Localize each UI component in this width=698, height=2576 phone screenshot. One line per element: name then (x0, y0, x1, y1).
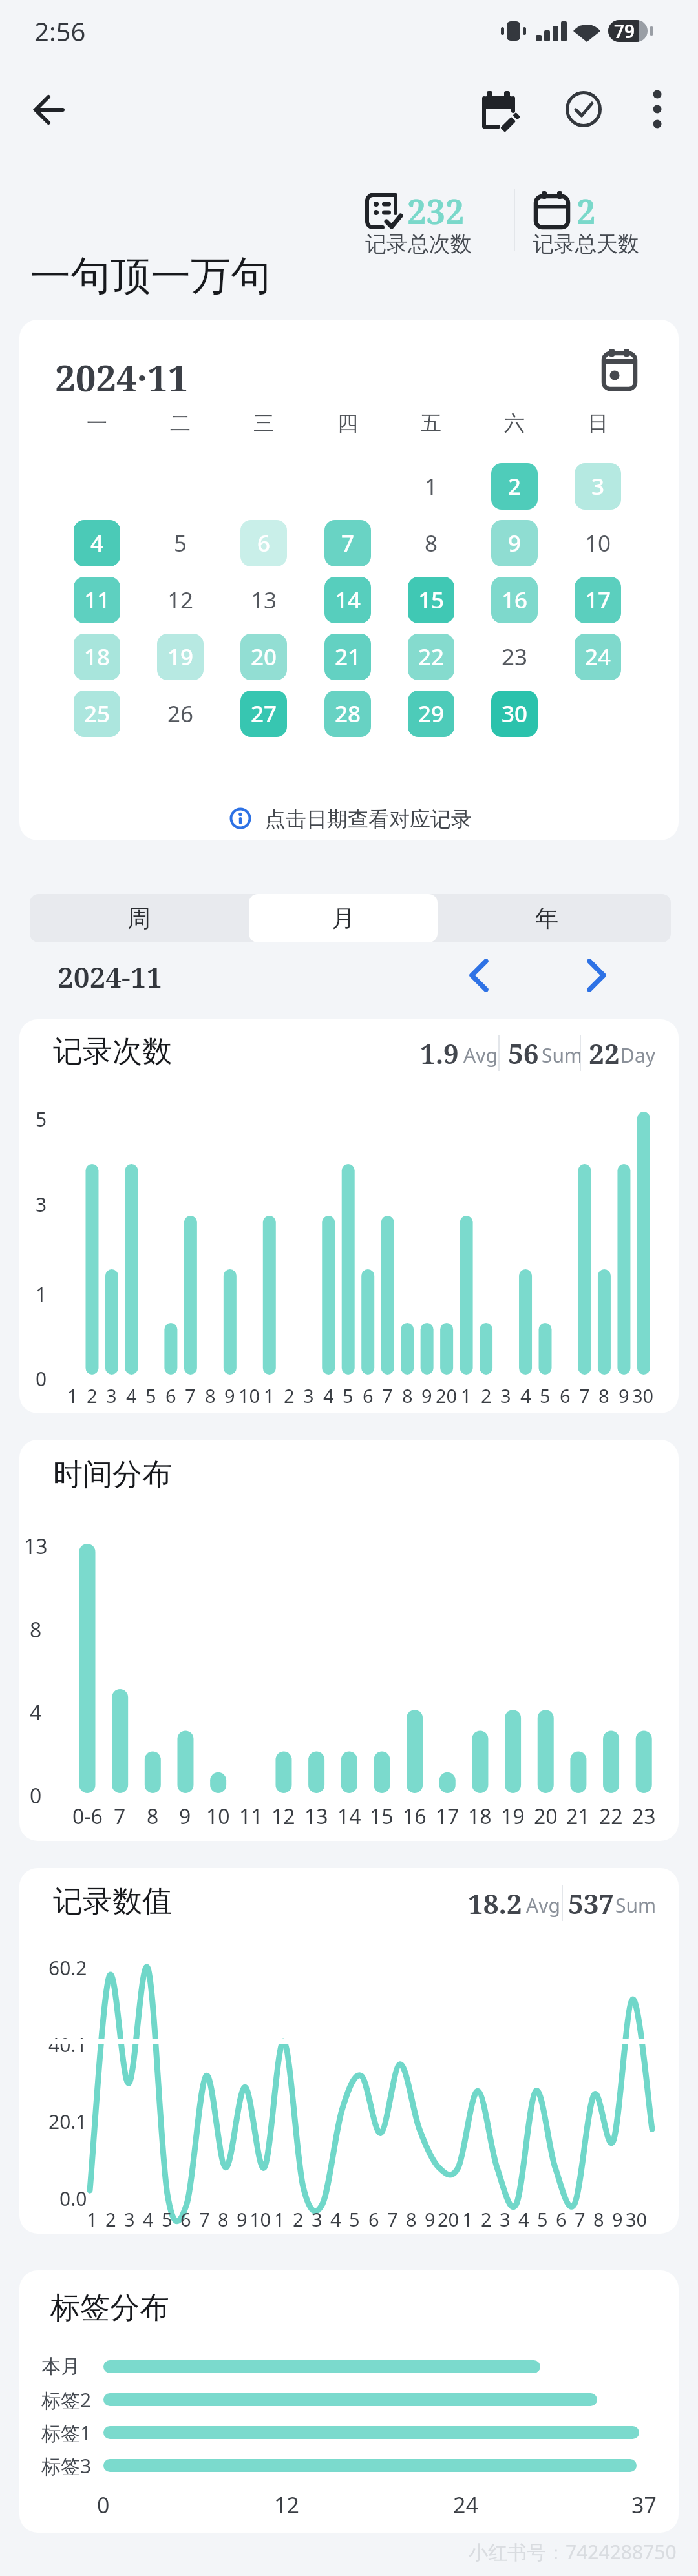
staticText: 26 (167, 698, 194, 729)
staticText: 7 (185, 1383, 196, 1408)
button[interactable]: 23 (491, 634, 538, 680)
button[interactable] (642, 87, 673, 131)
staticText: 5 (540, 1383, 551, 1408)
staticText: 2 (508, 471, 522, 502)
staticText: 2 (481, 2207, 492, 2232)
staticText: 19 (167, 641, 194, 672)
button[interactable]: 16 (491, 577, 538, 623)
staticText: 5 (162, 2207, 173, 2232)
staticText: 9 (237, 2207, 248, 2232)
staticText: 3 (312, 2207, 323, 2232)
button[interactable] (30, 894, 243, 942)
button[interactable]: 28 (324, 691, 371, 737)
staticText: 20 (436, 1383, 458, 1408)
staticText: 6 (165, 1383, 176, 1408)
button[interactable]: 2 (491, 463, 538, 510)
staticText: 29 (418, 698, 445, 729)
staticText: 记录次数 (53, 1033, 172, 1070)
button[interactable]: 10 (575, 520, 621, 566)
staticText: 6 (257, 528, 271, 559)
staticText: 六 (504, 410, 525, 436)
staticText: 12 (271, 1802, 295, 1831)
staticText: 3 (36, 1191, 47, 1218)
button[interactable]: 21 (324, 634, 371, 680)
button[interactable]: 25 (74, 691, 120, 737)
button[interactable] (571, 950, 622, 1001)
staticText: 二 (170, 410, 191, 436)
staticText: 18 (468, 1802, 492, 1831)
staticText: 14 (337, 1802, 361, 1831)
staticText: 40.1 (48, 2031, 87, 2058)
staticText: 10 (206, 1802, 230, 1831)
staticText: 12 (167, 585, 194, 616)
staticText: 7 (575, 2207, 586, 2232)
staticText: 20 (438, 2207, 460, 2232)
staticText: 8 (205, 1383, 216, 1408)
staticText: 13 (251, 585, 277, 616)
button[interactable]: 29 (408, 691, 454, 737)
staticText: 0 (36, 1366, 47, 1392)
button[interactable]: 13 (240, 577, 287, 623)
staticText: 23 (502, 641, 528, 672)
staticText: 22 (599, 1802, 623, 1831)
staticText: 30 (626, 2207, 648, 2232)
staticText: 记录总次数 (365, 231, 472, 258)
staticText: 17 (585, 585, 611, 616)
staticText: 年 (535, 904, 558, 933)
staticText: 11 (84, 585, 111, 616)
button[interactable] (453, 950, 505, 1001)
staticText: 周 (127, 904, 151, 933)
staticText: 30 (632, 1383, 654, 1408)
button[interactable]: 26 (157, 691, 204, 737)
staticText: 四 (337, 410, 358, 436)
staticText: 10 (249, 2207, 271, 2232)
staticText: 23 (632, 1802, 656, 1831)
button[interactable]: 6 (240, 520, 287, 566)
button[interactable]: 11 (74, 577, 120, 623)
staticText: 4 (323, 1383, 334, 1408)
staticText: 7 (114, 1802, 126, 1831)
button[interactable]: 8 (408, 520, 454, 566)
button[interactable]: 3 (575, 463, 621, 510)
button[interactable]: 15 (408, 577, 454, 623)
button[interactable]: 30 (491, 691, 538, 737)
staticText: 6 (368, 2207, 379, 2232)
staticText: 8 (218, 2207, 229, 2232)
button[interactable]: 9 (491, 520, 538, 566)
staticText: 月 (332, 904, 355, 933)
staticText: 一句顶一万句 (30, 251, 271, 301)
button[interactable]: 27 (240, 691, 287, 737)
button[interactable]: 5 (157, 520, 204, 566)
button[interactable]: 20 (240, 634, 287, 680)
button[interactable] (243, 894, 456, 942)
staticText: 三 (253, 410, 274, 436)
staticText: 6 (556, 2207, 567, 2232)
button[interactable]: 7 (324, 520, 371, 566)
button[interactable]: 12 (157, 577, 204, 623)
staticText: 20 (534, 1802, 558, 1831)
button[interactable] (22, 83, 74, 135)
button[interactable]: 1 (408, 463, 454, 510)
button[interactable]: 17 (575, 577, 621, 623)
staticText: 16 (502, 585, 528, 616)
button[interactable]: 19 (157, 634, 204, 680)
button[interactable]: 4 (74, 520, 120, 566)
staticText: 点击日期查看对应记录 (265, 806, 472, 832)
button[interactable] (456, 894, 671, 942)
button[interactable]: 14 (324, 577, 371, 623)
button[interactable]: 18 (74, 634, 120, 680)
staticText: 56 (508, 1035, 539, 1072)
staticText: 5 (174, 528, 187, 559)
staticText: 4 (126, 1383, 137, 1408)
button[interactable]: 24 (575, 634, 621, 680)
staticText: 7 (341, 528, 355, 559)
staticText: 8 (425, 528, 438, 559)
staticText: 记录数值 (53, 1883, 172, 1920)
button[interactable]: 22 (408, 634, 454, 680)
button[interactable] (563, 88, 604, 130)
button[interactable] (473, 82, 525, 134)
staticText: 5 (537, 2207, 548, 2232)
button[interactable] (598, 348, 640, 390)
staticText: 24 (453, 2490, 478, 2520)
staticText: 3 (106, 1383, 117, 1408)
